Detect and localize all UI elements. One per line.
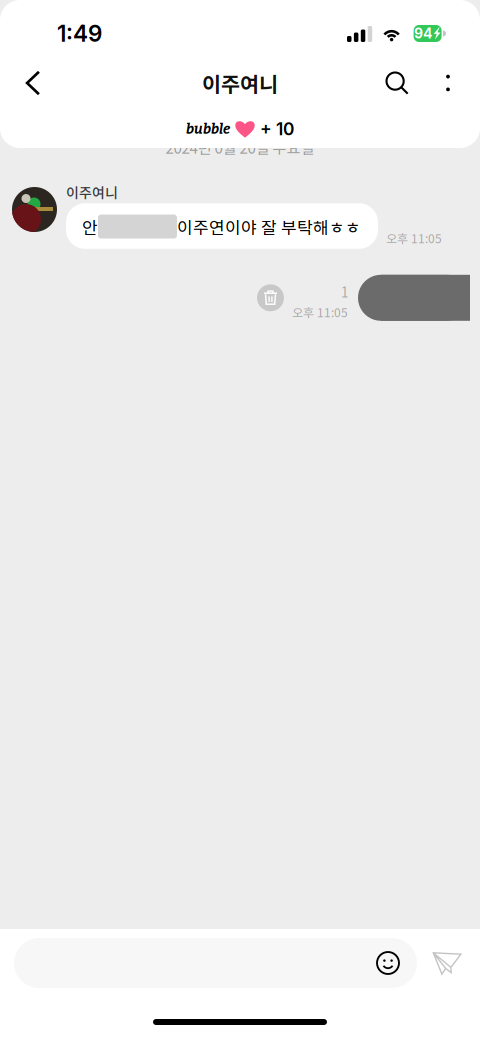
staticText: 오후 11:05 bbox=[386, 229, 442, 247]
button[interactable]: Delete message bbox=[257, 275, 284, 321]
staticText: 안 bbox=[82, 214, 98, 239]
button[interactable]: bubble bbox=[0, 105, 480, 147]
staticText: 이주여니 bbox=[202, 68, 278, 98]
staticText: 1 bbox=[341, 282, 348, 301]
staticText: 2024년 0월 20일 수요일 bbox=[165, 136, 314, 158]
button[interactable]: Search bbox=[377, 59, 417, 107]
staticText: + 10 bbox=[260, 118, 294, 139]
staticText: 이주연이야 잘 부탁해ㅎㅎ bbox=[177, 214, 361, 239]
staticText: 이주여니 bbox=[66, 182, 118, 202]
button[interactable]: Message bbox=[14, 938, 417, 988]
staticText: bubble bbox=[186, 121, 230, 137]
button[interactable]: Send bbox=[428, 938, 466, 988]
button[interactable]: More options bbox=[434, 59, 462, 107]
staticText: 1:49 bbox=[57, 20, 102, 47]
staticText: 94 bbox=[414, 25, 432, 42]
button[interactable]: Back bbox=[13, 59, 53, 107]
staticText: 오후 11:05 bbox=[292, 303, 348, 321]
